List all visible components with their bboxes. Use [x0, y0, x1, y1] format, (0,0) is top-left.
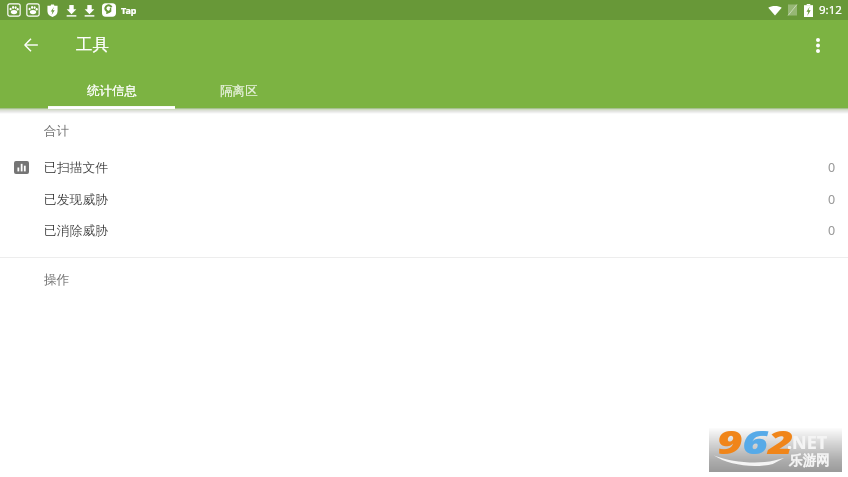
staticText: 0	[828, 222, 836, 239]
staticText: 隔离区	[220, 83, 258, 99]
button[interactable]: 已消除威胁	[0, 215, 848, 246]
staticText: 0	[828, 191, 836, 208]
staticText: 乐游网	[789, 452, 830, 469]
button[interactable]: 已扫描文件	[0, 152, 848, 183]
staticText: 9:12	[819, 2, 842, 18]
button[interactable]: 统计信息	[48, 68, 175, 108]
staticText: 已消除威胁	[44, 223, 108, 239]
staticText: .NET	[787, 430, 828, 455]
staticText: 已扫描文件	[44, 160, 108, 176]
staticText: 6	[743, 421, 768, 463]
staticText: 已发现威胁	[44, 192, 108, 208]
staticText: 9	[717, 421, 743, 463]
staticText: 工具	[76, 34, 109, 55]
button[interactable]: 已发现威胁	[0, 184, 848, 215]
staticText: 0	[828, 159, 836, 176]
button[interactable]: 隔离区	[175, 68, 302, 108]
button[interactable]: More options	[797, 25, 838, 66]
button[interactable]: Back	[10, 24, 52, 66]
staticText: 统计信息	[87, 83, 137, 99]
staticText: 合计	[44, 123, 69, 139]
staticText: Tap	[121, 4, 137, 16]
staticText: 操作	[44, 272, 69, 288]
staticText: 2	[768, 421, 794, 463]
